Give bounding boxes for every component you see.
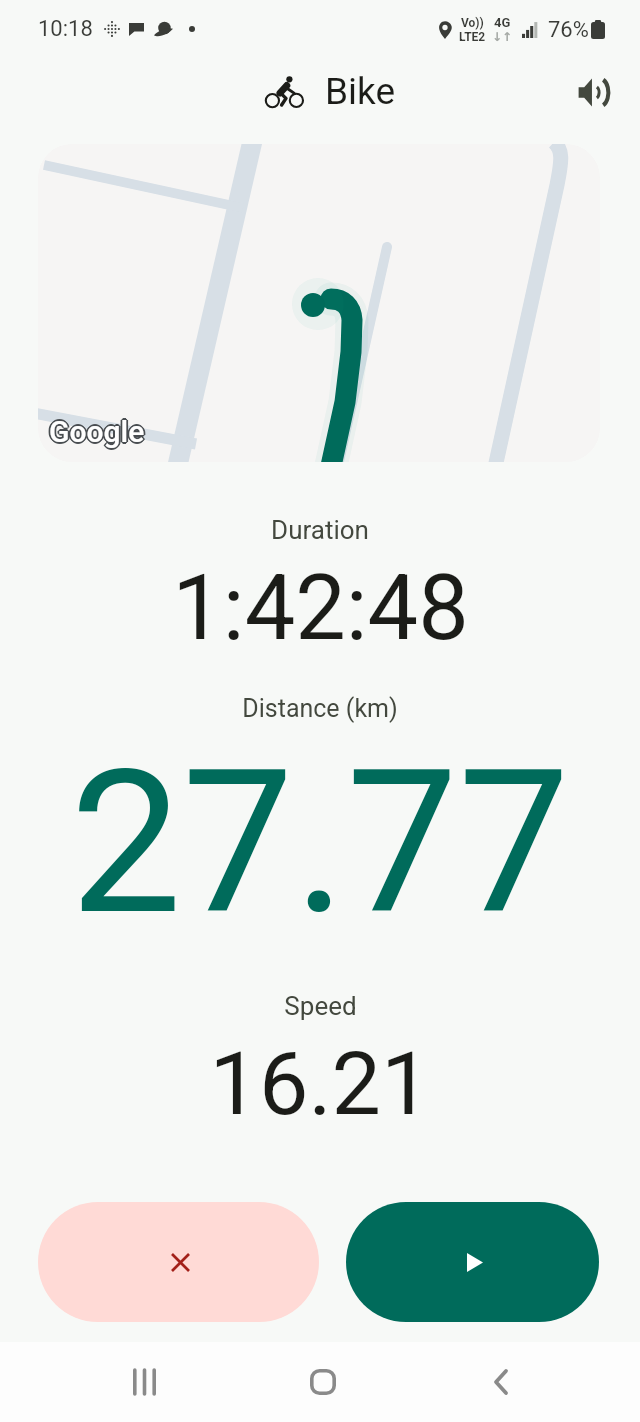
staticText: Google (48, 413, 144, 448)
staticText: Google (51, 414, 147, 449)
staticText: Google (48, 414, 144, 449)
button[interactable]: Recents (84, 1342, 204, 1422)
staticText: Google (50, 415, 146, 450)
staticText: Google (49, 415, 145, 450)
staticText: Google (50, 413, 146, 448)
staticText: 1:42:48 (172, 556, 469, 661)
staticText: Google (49, 416, 145, 451)
button[interactable]: Map (38, 144, 600, 462)
button[interactable]: Sound (569, 68, 617, 116)
staticText: Speed (284, 991, 357, 1021)
staticText: Google (47, 414, 143, 449)
staticText: Google (49, 414, 145, 449)
staticText: Google (49, 413, 145, 448)
button[interactable]: Back (441, 1342, 561, 1422)
staticText: Google (50, 414, 146, 449)
staticText: LTE2 (459, 30, 486, 44)
staticText: 4G (494, 15, 511, 30)
staticText: Bike (325, 70, 396, 113)
button[interactable]: Resume (346, 1202, 599, 1322)
staticText: 10:18 (38, 16, 93, 42)
staticText: Google (49, 412, 145, 447)
staticText: Distance (km) (242, 694, 398, 723)
staticText: 27.77 (70, 726, 570, 959)
button[interactable]: Stop (38, 1202, 319, 1322)
staticText: 16.21 (209, 1032, 431, 1135)
staticText: ↓↑ (492, 30, 513, 44)
staticText: Google (49, 414, 145, 449)
staticText: Vo)) (461, 16, 484, 30)
staticText: Google (48, 415, 144, 450)
button[interactable]: Home (263, 1342, 383, 1422)
staticText: Duration (271, 515, 369, 545)
staticText: 76% (548, 17, 589, 43)
